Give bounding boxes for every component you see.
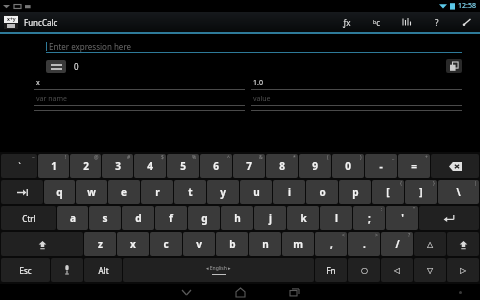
button[interactable]: p <box>339 180 371 204</box>
button[interactable]: - <box>365 154 397 178</box>
button[interactable]: space <box>123 258 314 282</box>
button[interactable]: Alt <box>84 258 122 282</box>
button[interactable]: Fn <box>315 258 347 282</box>
staticText: g <box>201 211 208 225</box>
button[interactable]: k <box>287 206 319 230</box>
button[interactable]: d <box>122 206 154 230</box>
staticText: \ <box>456 185 461 199</box>
button[interactable]: n <box>249 232 281 256</box>
button[interactable]: value <box>251 94 462 106</box>
button[interactable]: enter <box>419 206 479 230</box>
button[interactable]: t <box>174 180 206 204</box>
button[interactable]: Graph <box>398 13 416 31</box>
button[interactable]: Constants <box>368 13 386 31</box>
button[interactable]: y <box>207 180 239 204</box>
button[interactable]: Back <box>176 285 196 299</box>
staticText: 0 <box>74 61 79 72</box>
staticText: i <box>288 185 291 199</box>
button[interactable]: 7 <box>233 154 265 178</box>
button[interactable]: left <box>381 258 413 282</box>
button[interactable]: 6 <box>200 154 232 178</box>
button[interactable]: Menu <box>46 60 66 73</box>
button[interactable]: up <box>414 232 446 256</box>
staticText: 0 <box>345 159 351 173</box>
button[interactable]: Settings <box>458 13 476 31</box>
button[interactable]: ] <box>405 180 437 204</box>
button[interactable]: 2 <box>70 154 101 178</box>
staticText: | <box>474 180 477 187</box>
button[interactable]: g <box>188 206 220 230</box>
button[interactable]: f <box>155 206 187 230</box>
button[interactable]: a <box>57 206 88 230</box>
button[interactable]: i <box>273 180 305 204</box>
button[interactable]: . <box>348 232 380 256</box>
button[interactable]: Home <box>230 285 250 299</box>
button[interactable]: e <box>108 180 140 204</box>
button[interactable]: 3 <box>102 154 133 178</box>
button[interactable]: w <box>76 180 107 204</box>
button[interactable]: ` <box>1 154 37 178</box>
button[interactable]: h <box>221 206 253 230</box>
button[interactable]: 5 <box>167 154 199 178</box>
button[interactable]: 4 <box>134 154 166 178</box>
staticText: @ <box>94 154 99 161</box>
button[interactable]: c <box>150 232 182 256</box>
button[interactable]: = <box>398 154 430 178</box>
button[interactable]: m <box>282 232 314 256</box>
button[interactable]: var name <box>34 94 245 106</box>
button[interactable]: s <box>89 206 121 230</box>
button[interactable]: l <box>320 206 352 230</box>
button[interactable]: x <box>117 232 149 256</box>
staticText: _ <box>392 154 395 161</box>
staticText: 3 <box>115 159 121 173</box>
button[interactable]: shift <box>447 232 479 256</box>
button[interactable]: 0 <box>332 154 364 178</box>
button[interactable]: \ <box>438 180 479 204</box>
button[interactable]: z <box>84 232 116 256</box>
button[interactable]: down <box>414 258 446 282</box>
staticText: % <box>192 154 197 161</box>
button[interactable]: v <box>183 232 215 256</box>
button[interactable]: / <box>381 232 413 256</box>
button[interactable]: j <box>254 206 286 230</box>
button[interactable]: backspace <box>431 154 479 178</box>
staticText: Enter expression here <box>49 41 132 52</box>
button[interactable]: Functions <box>338 13 356 31</box>
button[interactable]: Esc <box>1 258 50 282</box>
button[interactable]: ' <box>386 206 418 230</box>
button[interactable]: mic <box>51 258 83 282</box>
button[interactable]: Ctrl <box>1 206 56 230</box>
button[interactable]: tab <box>1 180 43 204</box>
button[interactable]: App icon <box>4 15 18 29</box>
button[interactable]: Recents <box>284 285 304 299</box>
button[interactable]: x <box>34 78 245 90</box>
staticText: j <box>269 211 272 225</box>
staticText: : <box>381 206 383 213</box>
button[interactable]: o <box>306 180 338 204</box>
button[interactable]: 1 <box>38 154 69 178</box>
button[interactable]: Copy <box>446 59 462 73</box>
button[interactable]: 8 <box>266 154 298 178</box>
button[interactable]: 9 <box>299 154 331 178</box>
staticText: y <box>220 185 226 199</box>
staticText: ◂ English ▸ <box>206 265 231 272</box>
button[interactable]: 1.0 <box>251 78 462 90</box>
button[interactable]: r <box>141 180 173 204</box>
button[interactable]: ; <box>353 206 385 230</box>
button[interactable]: Help <box>428 13 446 31</box>
button[interactable]: right <box>447 258 479 282</box>
button[interactable]: b <box>216 232 248 256</box>
button[interactable]: Enter expression here <box>46 40 462 53</box>
button[interactable]: , <box>315 232 347 256</box>
staticText: 9 <box>312 159 318 173</box>
staticText: c <box>163 237 169 251</box>
button[interactable]: circle <box>348 258 380 282</box>
staticText: = <box>411 159 417 173</box>
button[interactable]: u <box>240 180 272 204</box>
button[interactable]: shift <box>1 232 83 256</box>
staticText: * <box>293 154 296 161</box>
button[interactable]: [ <box>372 180 404 204</box>
staticText: Alt <box>98 265 109 276</box>
button[interactable]: q <box>44 180 75 204</box>
staticText: u <box>253 185 260 199</box>
